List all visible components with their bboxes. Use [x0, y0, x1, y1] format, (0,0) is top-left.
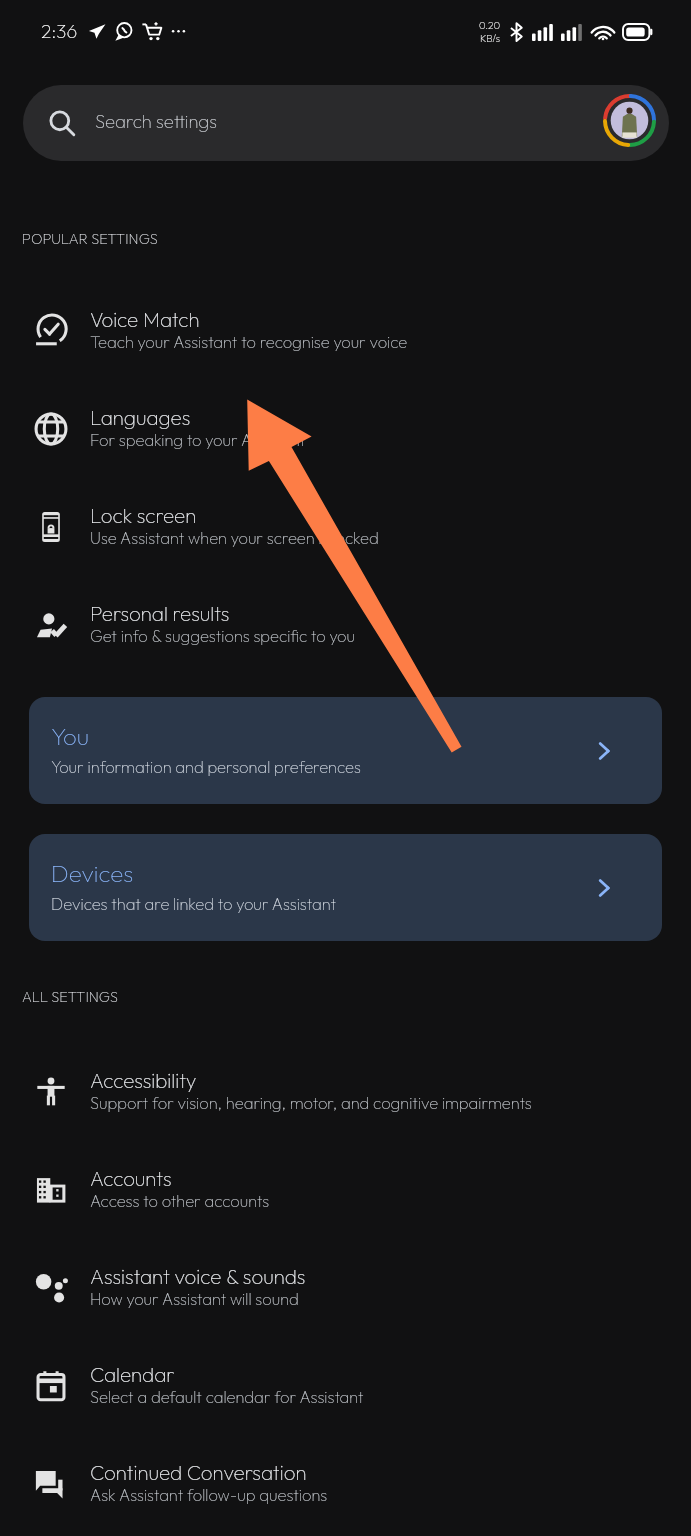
staticText: Assistant voice & sounds — [90, 1263, 306, 1289]
button[interactable]: Search settings — [23, 85, 669, 161]
button[interactable]: Personal results — [0, 577, 691, 675]
button[interactable]: Lock screen — [0, 479, 691, 577]
staticText: Accounts — [90, 1165, 172, 1191]
staticText: Devices that are linked to your Assistan… — [51, 893, 336, 914]
button[interactable]: Assistant voice & sounds — [0, 1240, 691, 1338]
staticText: KB/s — [480, 32, 500, 45]
staticText: You — [51, 721, 89, 751]
staticText: Voice Match — [90, 306, 200, 332]
staticText: Personal results — [90, 600, 230, 626]
staticText: 0.20 — [479, 19, 501, 32]
button[interactable]: Calendar — [0, 1338, 691, 1436]
staticText: 2:36 — [41, 19, 78, 43]
staticText: Select a default calendar for Assistant — [90, 1386, 364, 1407]
staticText: Access to other accounts — [90, 1190, 270, 1211]
staticText: Support for vision, hearing, motor, and … — [90, 1092, 532, 1113]
staticText: Get info & suggestions specific to you — [90, 625, 356, 646]
staticText: Teach your Assistant to recognise your v… — [90, 331, 408, 352]
button[interactable]: Continued Conversation — [0, 1436, 691, 1534]
staticText: Use Assistant when your screen is locked — [90, 527, 379, 548]
staticText: Search settings — [95, 109, 217, 132]
staticText: Devices — [51, 858, 134, 888]
button[interactable]: Accessibility — [0, 1044, 691, 1142]
button[interactable]: Accounts — [0, 1142, 691, 1240]
button[interactable]: Devices — [29, 834, 662, 941]
staticText: For speaking to your Assistant — [90, 429, 306, 450]
staticText: Lock screen — [90, 502, 197, 528]
button[interactable]: Google account — [603, 94, 656, 147]
staticText: Calendar — [90, 1361, 175, 1387]
staticText: Continued Conversation — [90, 1459, 307, 1485]
staticText: How your Assistant will sound — [90, 1288, 299, 1309]
staticText: ALL SETTINGS — [22, 987, 118, 1005]
button[interactable]: You — [29, 697, 662, 804]
staticText: Ask Assistant follow-up questions — [90, 1484, 328, 1505]
staticText: POPULAR SETTINGS — [22, 229, 158, 247]
button[interactable]: Voice Match — [0, 283, 691, 381]
staticText: Languages — [90, 404, 191, 430]
button[interactable]: Languages — [0, 381, 691, 479]
staticText: Accessibility — [90, 1067, 197, 1093]
staticText: Your information and personal preference… — [51, 756, 361, 777]
